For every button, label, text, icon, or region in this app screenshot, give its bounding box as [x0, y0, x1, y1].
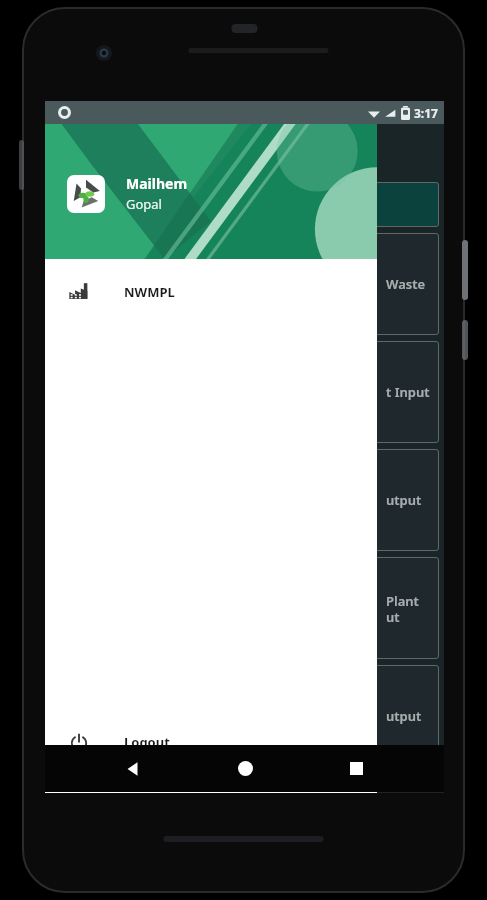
button[interactable]: Recents	[332, 745, 380, 792]
staticText: utput	[386, 491, 422, 509]
button[interactable]: Logout	[45, 719, 377, 765]
button[interactable]: utput	[50, 665, 439, 767]
staticText: NWMPL	[124, 283, 175, 301]
staticText: t Input	[386, 383, 430, 401]
button[interactable]: NWMPL	[45, 269, 377, 315]
staticText: Waste	[386, 275, 426, 293]
other: Profile	[67, 175, 105, 213]
staticText: Gopal	[126, 195, 162, 213]
staticText: Plant ut	[386, 592, 419, 625]
button[interactable]: Back	[109, 745, 157, 792]
button[interactable]	[50, 182, 439, 227]
button[interactable]: Plant ut	[50, 557, 439, 659]
button[interactable]: utput	[50, 449, 439, 551]
button[interactable]: t Input	[50, 341, 439, 443]
button[interactable]: Home	[221, 745, 269, 792]
staticText: utput	[386, 707, 422, 725]
button[interactable]: Waste	[50, 233, 439, 335]
button[interactable]: Profile	[45, 124, 377, 259]
staticText: Logout	[124, 733, 170, 751]
staticText: Mailhem	[126, 174, 188, 193]
staticText: 3:17	[414, 105, 438, 121]
